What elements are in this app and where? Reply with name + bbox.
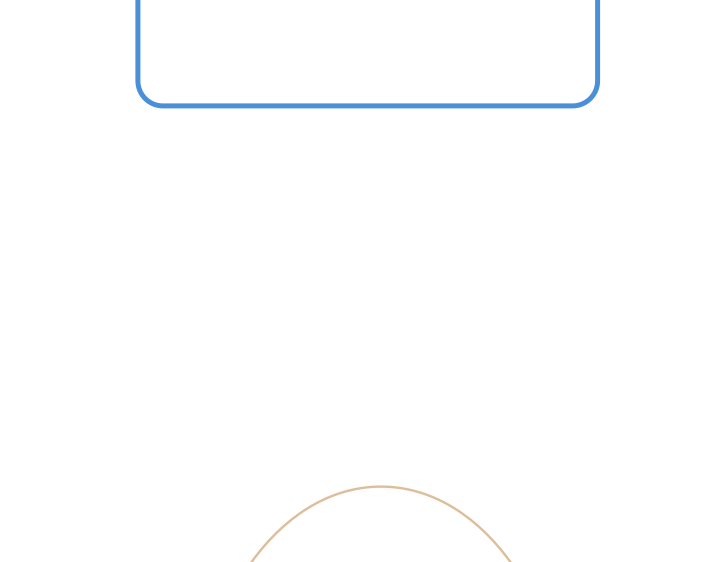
button[interactable]: Card bbox=[135, 0, 600, 108]
